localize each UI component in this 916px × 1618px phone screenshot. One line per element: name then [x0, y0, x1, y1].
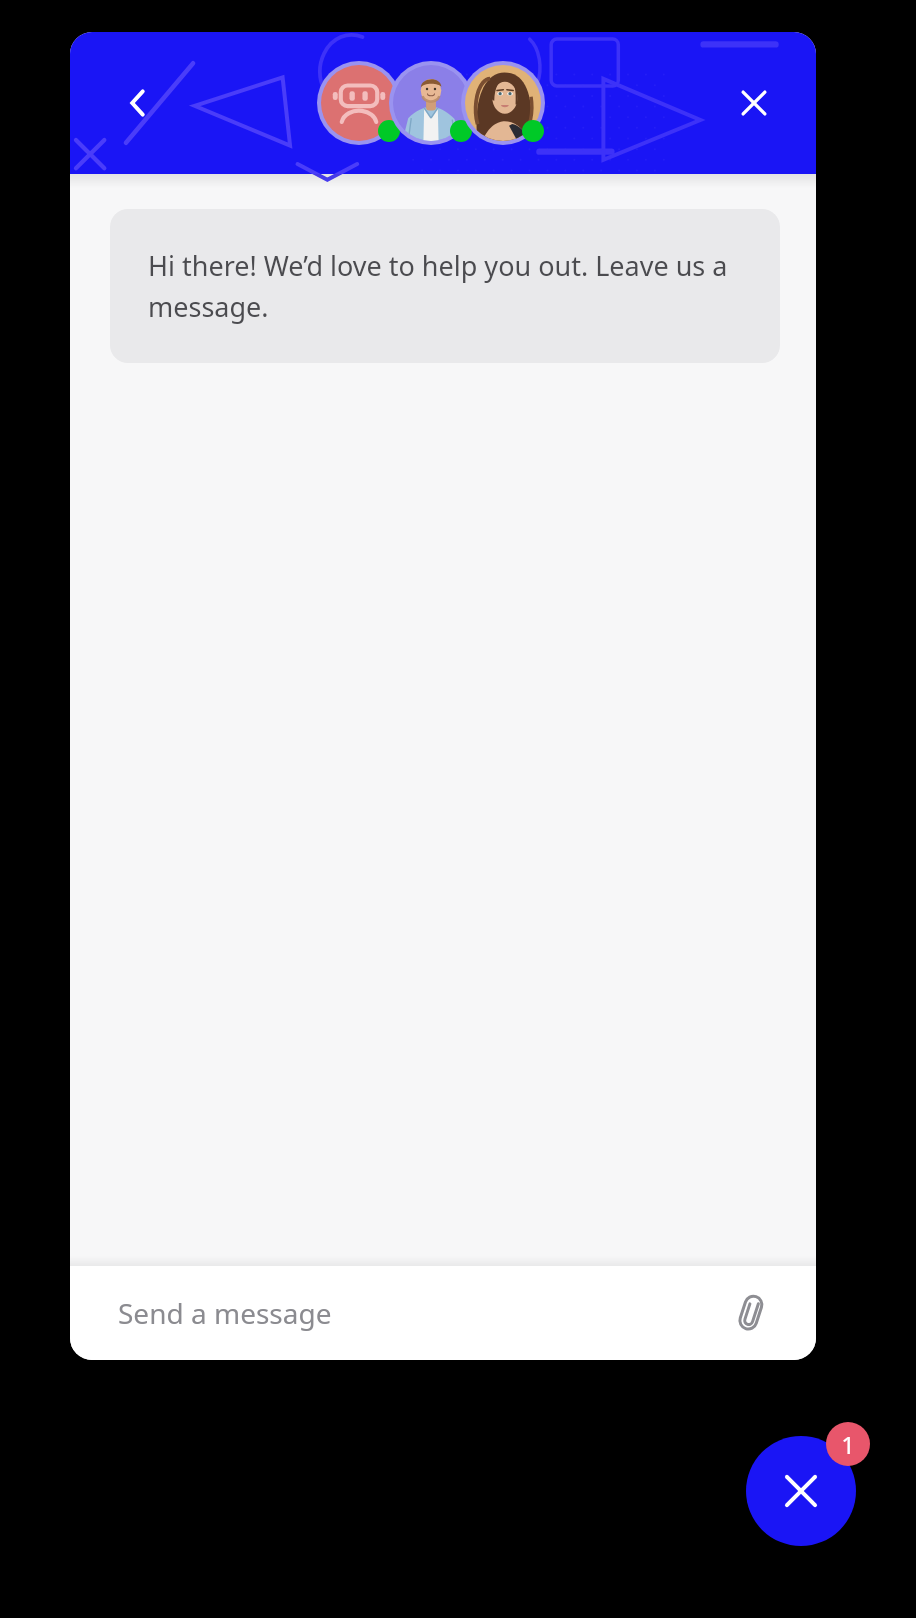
staticText: 1 — [841, 1428, 855, 1461]
staticText: Hi there! We’d love to help you out. Lea… — [148, 247, 742, 325]
button[interactable]: Back — [112, 77, 164, 129]
button[interactable]: Teammate — [389, 61, 473, 145]
button[interactable]: Teammate — [461, 61, 545, 145]
button[interactable]: Hi there! We’d love to help you out. Lea… — [110, 209, 780, 363]
button[interactable]: Close — [728, 77, 780, 129]
button[interactable]: Close messenger — [746, 1436, 856, 1546]
button[interactable]: Teammate — [317, 61, 401, 145]
button[interactable]: Attach file — [724, 1285, 780, 1341]
button[interactable]: Send a message — [70, 1266, 816, 1360]
staticText: Send a message — [118, 1294, 724, 1332]
